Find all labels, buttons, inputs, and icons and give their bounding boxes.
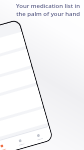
button[interactable]	[0, 85, 43, 128]
button[interactable]	[0, 68, 36, 105]
staticText: Your medication list in the palm of your…	[14, 2, 80, 18]
button[interactable]	[0, 108, 48, 145]
button[interactable]	[0, 32, 26, 69]
button[interactable]: Schedule	[11, 137, 30, 148]
button[interactable]	[0, 49, 31, 88]
button[interactable]: Medications	[0, 142, 12, 150]
button[interactable]: Profile	[29, 131, 49, 142]
